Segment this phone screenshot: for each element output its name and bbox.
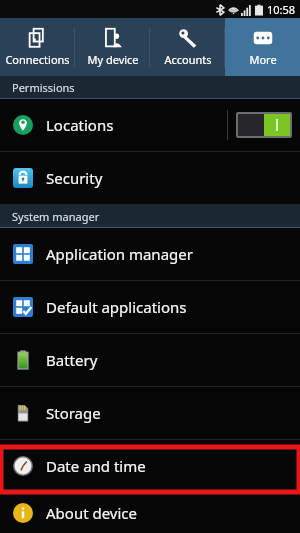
- button[interactable]: Default applications: [0, 281, 300, 333]
- staticText: Default applications: [46, 297, 187, 317]
- button[interactable]: More: [225, 18, 300, 76]
- button[interactable]: Security: [0, 152, 300, 204]
- staticText: Locations: [46, 115, 114, 135]
- button[interactable]: Connections: [0, 18, 75, 76]
- staticText: Security: [46, 168, 103, 188]
- staticText: Application manager: [46, 244, 193, 264]
- staticText: Permissions: [12, 80, 75, 95]
- staticText: Connections: [5, 52, 70, 67]
- button[interactable]: Date and time: [0, 440, 300, 492]
- button[interactable]: Locations: [0, 99, 300, 151]
- staticText: Date and time: [46, 456, 146, 476]
- staticText: 10:58: [267, 2, 296, 17]
- button[interactable]: Locations on: [238, 114, 290, 136]
- staticText: More: [249, 52, 277, 67]
- button[interactable]: My device: [75, 18, 150, 76]
- staticText: Accounts: [164, 52, 212, 67]
- staticText: My device: [87, 52, 139, 67]
- button[interactable]: About device: [0, 493, 300, 533]
- button[interactable]: Storage: [0, 387, 300, 439]
- staticText: Storage: [46, 403, 101, 423]
- staticText: System manager: [12, 209, 100, 224]
- staticText: Battery: [46, 350, 98, 370]
- staticText: About device: [46, 503, 138, 523]
- button[interactable]: Battery: [0, 334, 300, 386]
- button[interactable]: Accounts: [150, 18, 225, 76]
- button[interactable]: Application manager: [0, 228, 300, 280]
